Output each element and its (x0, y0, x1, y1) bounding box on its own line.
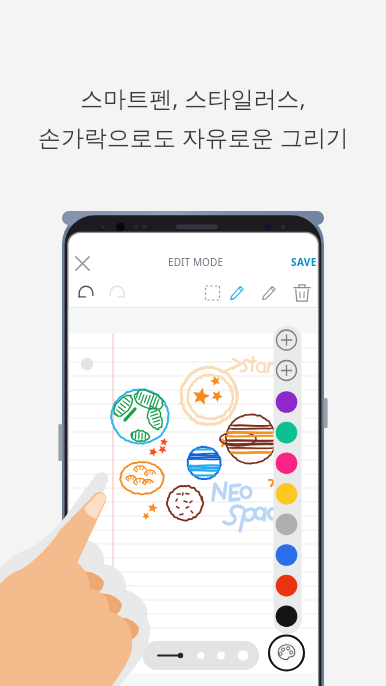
button[interactable]: Pen (225, 281, 250, 306)
button[interactable]: Redo (105, 281, 130, 306)
button[interactable]: SAVE (285, 249, 323, 275)
button[interactable]: Select (200, 281, 225, 306)
staticText: SAVE (291, 255, 317, 269)
button[interactable]: Delete (290, 281, 315, 306)
button[interactable]: Pencil (257, 281, 282, 306)
button[interactable]: Color palette (269, 633, 307, 671)
button[interactable]: Close (70, 251, 95, 276)
staticText: 손가락으로도 자유로운 그리기 (38, 121, 349, 152)
staticText: 스마트펜, 스타일러스, (80, 82, 306, 113)
staticText: EDIT MODE (168, 255, 224, 269)
button[interactable]: Undo (74, 281, 99, 306)
